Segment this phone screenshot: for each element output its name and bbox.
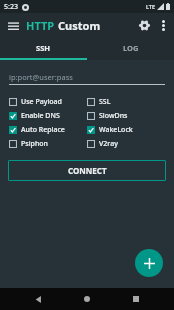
button[interactable]: Enable DNS — [9, 109, 87, 123]
staticText: V2ray — [99, 139, 118, 149]
button[interactable]: More options — [154, 16, 172, 34]
staticText: SSL — [99, 97, 111, 107]
staticText: SlowDns — [99, 111, 128, 121]
button[interactable]: ip:port@user:pass — [9, 69, 165, 82]
staticText: Custom — [58, 18, 101, 33]
staticText: ip:port@user:pass — [9, 72, 73, 82]
button[interactable]: CONNECT — [8, 160, 166, 181]
button[interactable]: Auto Replace — [9, 123, 87, 137]
staticText: HTTP — [26, 18, 55, 33]
staticText: LTE — [146, 3, 155, 10]
staticText: Auto Replace — [21, 125, 65, 135]
button[interactable]: WakeLock — [87, 123, 165, 137]
staticText: Use Payload — [21, 97, 62, 107]
button[interactable]: V2ray — [87, 137, 165, 151]
button[interactable]: SSL — [87, 95, 165, 109]
staticText: SSH — [36, 43, 51, 53]
button[interactable]: Home — [76, 288, 98, 310]
staticText: Enable DNS — [21, 111, 60, 121]
staticText: WakeLock — [99, 125, 133, 135]
button[interactable]: Recent apps — [125, 288, 147, 310]
staticText: 5:23 — [4, 2, 18, 12]
button[interactable]: Psiphon — [9, 137, 87, 151]
button[interactable]: Back — [27, 288, 49, 310]
button[interactable]: Add configuration — [135, 249, 163, 277]
staticText: Psiphon — [21, 139, 48, 149]
button[interactable]: Settings — [134, 15, 154, 35]
button[interactable]: LOG — [87, 37, 174, 58]
staticText: CONNECT — [68, 165, 107, 176]
button[interactable]: SSH — [0, 37, 87, 58]
button[interactable]: Open navigation menu — [3, 15, 23, 35]
button[interactable]: Use Payload — [9, 95, 87, 109]
button[interactable]: SlowDns — [87, 109, 165, 123]
staticText: LOG — [123, 43, 139, 53]
